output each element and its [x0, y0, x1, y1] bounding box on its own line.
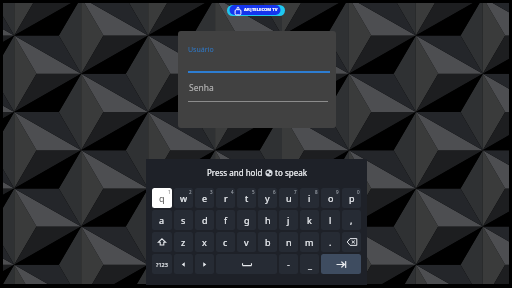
staticText: -	[287, 258, 290, 270]
button[interactable]: n	[279, 232, 298, 252]
button[interactable]: t	[237, 188, 256, 208]
staticText: g	[244, 214, 250, 226]
staticText: 2	[189, 189, 192, 195]
staticText: _	[308, 258, 312, 270]
staticText: l	[329, 214, 332, 226]
button[interactable]: e	[195, 188, 214, 208]
staticText: v	[244, 236, 249, 248]
button[interactable]: p	[342, 188, 361, 208]
staticText: j	[287, 214, 290, 226]
staticText: z	[181, 236, 186, 248]
staticText: 4	[231, 189, 234, 195]
button[interactable]: b	[258, 232, 277, 252]
button[interactable]: Backspace	[342, 232, 361, 252]
staticText: 5	[252, 189, 255, 195]
staticText: t	[245, 192, 249, 204]
staticText: d	[202, 214, 208, 226]
staticText: 8	[315, 189, 318, 195]
staticText: p	[349, 192, 355, 204]
button[interactable]: l	[321, 210, 340, 230]
staticText: u	[286, 192, 292, 204]
staticText: Senha	[189, 82, 214, 94]
staticText: w	[180, 192, 188, 204]
button[interactable]: AR TELECOM TV	[227, 4, 285, 17]
staticText: r	[224, 192, 228, 204]
button[interactable]: j	[279, 210, 298, 230]
button[interactable]: i	[300, 188, 319, 208]
staticText: x	[202, 236, 207, 248]
button[interactable]: x	[195, 232, 214, 252]
staticText: n	[286, 236, 292, 248]
button[interactable]: h	[258, 210, 277, 230]
button[interactable]: w	[174, 188, 193, 208]
staticText: f	[224, 214, 228, 226]
staticText: to speak	[273, 167, 307, 178]
button[interactable]: d	[195, 210, 214, 230]
button[interactable]: Move right	[195, 254, 214, 274]
button[interactable]: g	[237, 210, 256, 230]
staticText: ?123	[156, 261, 168, 268]
staticText: .	[329, 236, 332, 248]
staticText: b	[265, 236, 271, 248]
button[interactable]: Move left	[174, 254, 193, 274]
staticText: 3	[210, 189, 213, 195]
button[interactable]: r	[216, 188, 235, 208]
staticText: 0	[357, 189, 360, 195]
button[interactable]: z	[174, 232, 193, 252]
button[interactable]: c	[216, 232, 235, 252]
button[interactable]: f	[216, 210, 235, 230]
staticText: q	[159, 192, 165, 204]
button[interactable]: o	[321, 188, 340, 208]
staticText: o	[328, 192, 334, 204]
staticText: i	[308, 192, 311, 204]
button[interactable]: v	[237, 232, 256, 252]
button[interactable]: _	[300, 254, 319, 274]
button[interactable]: k	[300, 210, 319, 230]
button[interactable]: s	[174, 210, 193, 230]
button[interactable]: y	[258, 188, 277, 208]
staticText: 1	[168, 189, 171, 195]
staticText: h	[265, 214, 271, 226]
staticText: k	[307, 214, 312, 226]
staticText: 9	[336, 189, 339, 195]
staticText: e	[202, 192, 208, 204]
button[interactable]: .	[321, 232, 340, 252]
button[interactable]: u	[279, 188, 298, 208]
button[interactable]: Space	[216, 254, 277, 274]
button[interactable]: ,	[342, 210, 361, 230]
button[interactable]: q	[152, 188, 172, 208]
staticText: a	[159, 214, 165, 226]
staticText: ,	[350, 214, 353, 226]
staticText: Press and hold	[207, 167, 265, 178]
staticText: Usuário	[188, 45, 214, 55]
button[interactable]: a	[152, 210, 172, 230]
button[interactable]: Shift	[152, 232, 172, 252]
staticText: s	[181, 214, 186, 226]
button[interactable]: -	[279, 254, 298, 274]
button[interactable]: ?123	[152, 254, 172, 274]
button[interactable]: m	[300, 232, 319, 252]
staticText: AR|TELECOM TV	[244, 7, 278, 13]
staticText: 6	[273, 189, 276, 195]
staticText: m	[305, 236, 314, 248]
staticText: y	[265, 192, 270, 204]
button[interactable]: Next	[321, 254, 361, 274]
staticText: 7	[294, 189, 297, 195]
staticText: c	[223, 236, 228, 248]
